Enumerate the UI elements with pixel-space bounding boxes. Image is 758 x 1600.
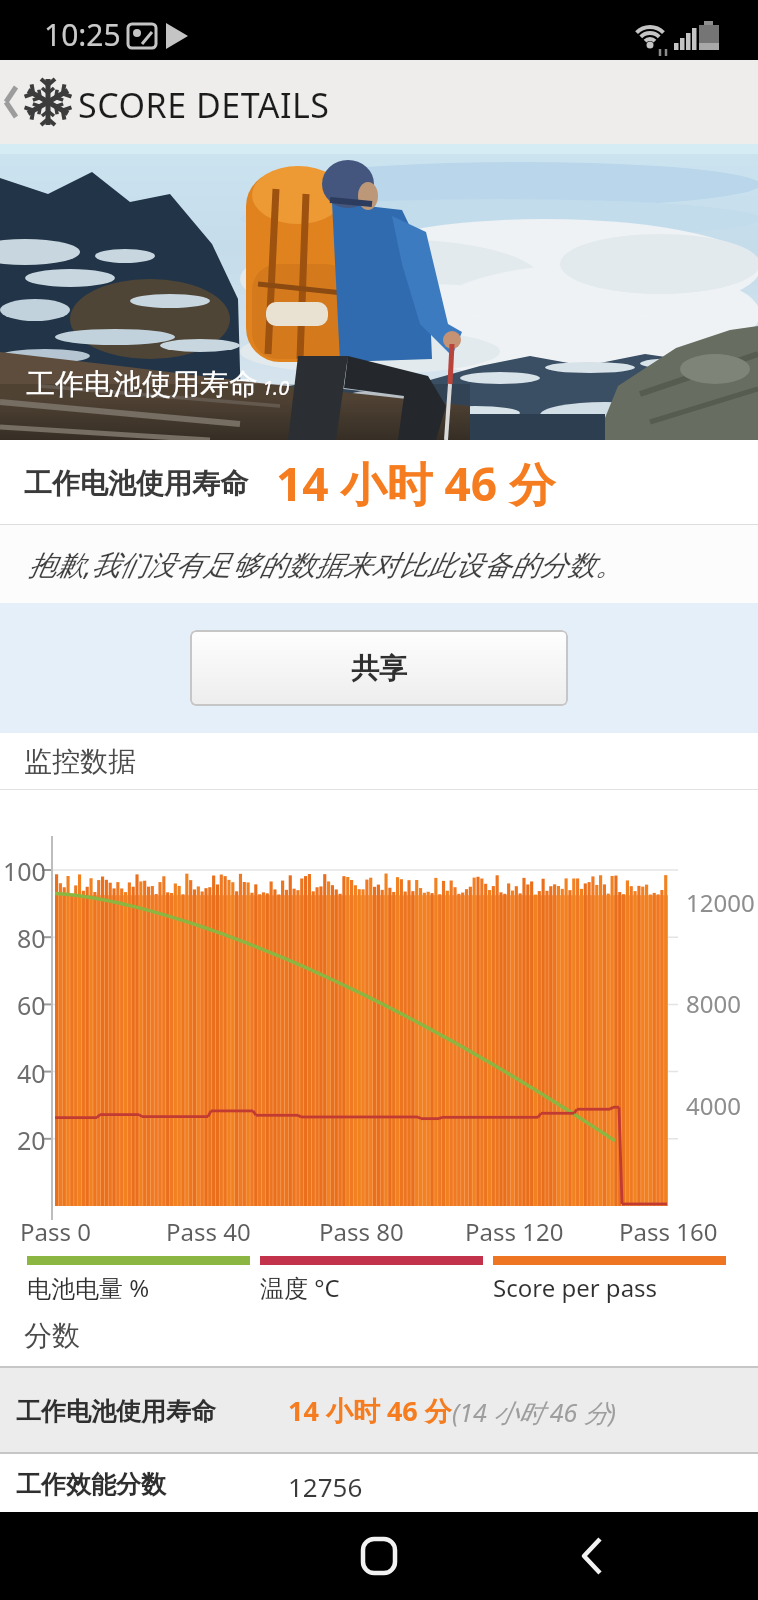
staticText: Pass 0	[20, 1215, 91, 1245]
staticText: 20	[17, 1123, 46, 1155]
staticText: Score per pass	[493, 1271, 658, 1304]
staticText: 工作效能分数	[16, 1469, 166, 1500]
staticText: 14 小时 46 分	[288, 1392, 452, 1429]
staticText: Pass 160	[619, 1215, 718, 1245]
staticText: 工作电池使用寿命	[16, 1396, 216, 1427]
staticText: 4000	[686, 1089, 741, 1122]
button[interactable]	[0, 60, 76, 144]
staticText: 温度 °C	[260, 1271, 340, 1304]
staticText: 监控数据	[24, 744, 136, 779]
staticText: 60	[17, 988, 46, 1020]
staticText: 电池电量 %	[27, 1271, 150, 1304]
staticText: 100	[3, 854, 46, 886]
button[interactable]	[349, 1526, 409, 1586]
staticText: 抱歉,我们没有足够的数据来对比此设备的分数。	[28, 545, 624, 583]
staticText: 分数	[24, 1318, 80, 1353]
staticText: 工作电池使用寿命	[26, 366, 258, 403]
button[interactable]	[562, 1526, 622, 1586]
staticText: (14 小时 46 分)	[452, 1395, 617, 1429]
staticText: Pass 120	[465, 1215, 564, 1245]
button[interactable]: 工作电池使用寿命	[0, 1368, 758, 1452]
staticText: 12756	[288, 1469, 363, 1504]
staticText: Pass 80	[319, 1215, 404, 1245]
staticText: 80	[17, 921, 46, 953]
staticText: Pass 40	[166, 1215, 251, 1245]
staticText: 1.0	[262, 374, 290, 401]
staticText: 12000	[686, 886, 755, 919]
staticText: 14 小时 46 分	[276, 452, 556, 515]
button[interactable]: 共享	[190, 630, 568, 706]
staticText: SCORE DETAILS	[78, 82, 330, 128]
button[interactable]: 工作效能分数	[0, 1454, 758, 1512]
staticText: 工作电池使用寿命	[24, 466, 248, 501]
staticText: 共享	[351, 651, 407, 686]
staticText: 40	[17, 1056, 46, 1088]
staticText: 10:25	[44, 14, 121, 55]
staticText: 8000	[686, 987, 741, 1020]
